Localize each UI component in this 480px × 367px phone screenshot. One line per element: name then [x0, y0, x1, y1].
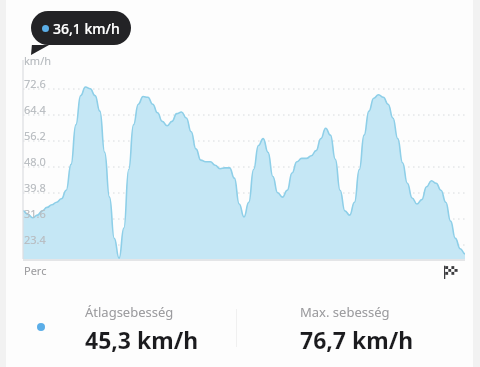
- staticText: km/h: [24, 53, 52, 68]
- staticText: 56.2: [24, 128, 46, 143]
- staticText: 23.4: [24, 232, 46, 247]
- staticText: 76,7 km/h: [300, 324, 414, 355]
- staticText: 39.8: [24, 180, 46, 195]
- staticText: Átlagsebesség: [85, 303, 174, 321]
- staticText: Max. sebesség: [300, 303, 390, 321]
- button[interactable]: Max. sebesség: [300, 303, 460, 355]
- staticText: 48.0: [24, 154, 46, 169]
- button[interactable]: 36,1 km/h: [31, 11, 131, 45]
- button[interactable]: Finish: [442, 263, 460, 281]
- staticText: 64.4: [24, 102, 46, 117]
- staticText: 72.6: [24, 76, 46, 91]
- staticText: 31.6: [24, 206, 46, 221]
- button[interactable]: Átlagsebesség: [85, 303, 235, 355]
- staticText: 45,3 km/h: [85, 324, 199, 355]
- staticText: 36,1 km/h: [53, 19, 120, 38]
- staticText: Perc: [24, 263, 47, 278]
